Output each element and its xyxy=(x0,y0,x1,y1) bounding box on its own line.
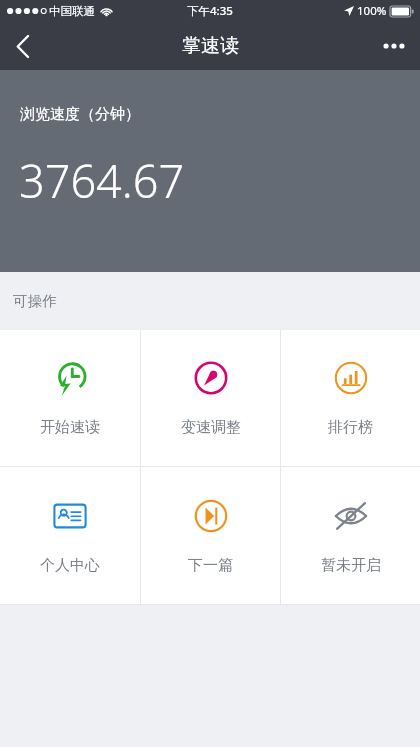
staticText: 变速调整 xyxy=(181,418,241,437)
button[interactable]: Back xyxy=(0,23,46,69)
button[interactable]: 变速调整 xyxy=(141,330,280,466)
staticText: 下一篇 xyxy=(188,556,233,575)
staticText: 3764.67 xyxy=(19,150,185,211)
staticText: 下午4:35 xyxy=(187,3,233,19)
staticText: 100% xyxy=(357,3,387,19)
button[interactable]: 个人中心 xyxy=(0,467,140,604)
button[interactable]: 暂未开启 xyxy=(281,467,420,604)
staticText: 浏览速度（分钟） xyxy=(20,105,140,124)
staticText: 中国联通 xyxy=(49,4,95,18)
button[interactable]: 开始速读 xyxy=(0,330,140,466)
staticText: 个人中心 xyxy=(40,556,100,575)
staticText: 暂未开启 xyxy=(321,556,381,575)
button[interactable]: 下一篇 xyxy=(141,467,280,604)
button[interactable]: 排行榜 xyxy=(281,330,420,466)
staticText: 可操作 xyxy=(13,292,57,310)
button[interactable]: More options xyxy=(368,22,420,70)
staticText: 掌速读 xyxy=(182,34,239,58)
staticText: 排行榜 xyxy=(328,418,373,437)
staticText: 开始速读 xyxy=(40,418,100,437)
